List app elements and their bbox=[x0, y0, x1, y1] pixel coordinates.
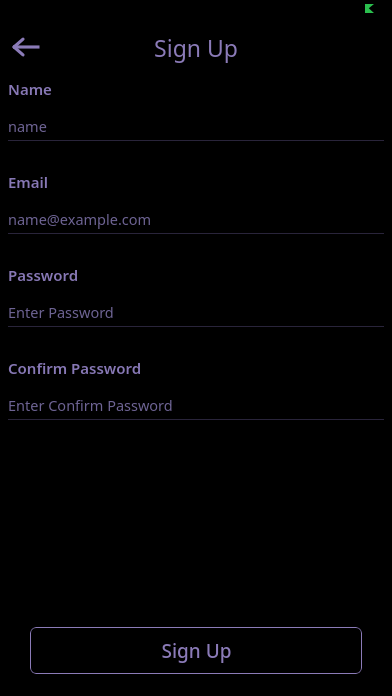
staticText: Enter Password bbox=[8, 302, 114, 322]
staticText: Password bbox=[8, 265, 79, 285]
button[interactable]: Name bbox=[0, 79, 392, 172]
staticText: Confirm Password bbox=[8, 358, 142, 378]
staticText: name@example.com bbox=[8, 209, 152, 229]
button[interactable]: Back bbox=[6, 28, 46, 66]
button[interactable]: Password bbox=[0, 265, 392, 358]
button[interactable]: Email bbox=[0, 172, 392, 265]
button[interactable]: Sign Up bbox=[30, 627, 362, 674]
staticText: Sign Up bbox=[161, 638, 232, 664]
staticText: name bbox=[8, 116, 47, 136]
staticText: Enter Confirm Password bbox=[8, 395, 173, 415]
staticText: Sign Up bbox=[0, 32, 392, 63]
staticText: Name bbox=[8, 79, 52, 99]
button[interactable]: Confirm Password bbox=[0, 358, 392, 451]
staticText: Email bbox=[8, 172, 49, 192]
